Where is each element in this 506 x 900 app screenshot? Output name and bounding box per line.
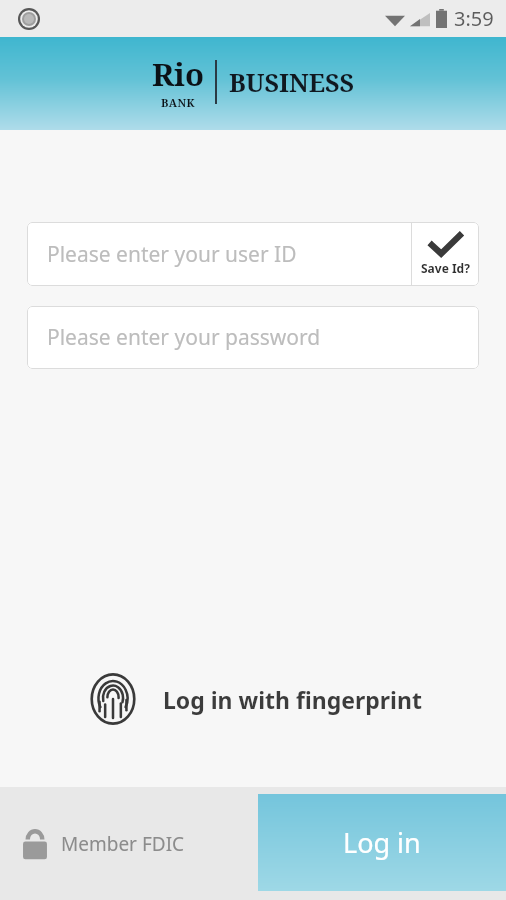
staticText: BUSINESS xyxy=(229,65,354,99)
button[interactable]: Please enter your user ID xyxy=(27,222,411,286)
staticText: 3:59 xyxy=(454,5,494,32)
button[interactable]: Please enter your password xyxy=(27,306,479,369)
staticText: Member FDIC xyxy=(61,831,185,857)
staticText: Log in xyxy=(343,824,421,861)
staticText: Log in with fingerprint xyxy=(163,684,422,715)
button[interactable]: Save Id xyxy=(412,222,479,286)
staticText: Please enter your password xyxy=(47,323,321,352)
staticText: BANK xyxy=(161,95,196,110)
staticText: Save Id? xyxy=(421,260,470,276)
staticText: Rio xyxy=(152,53,205,95)
button[interactable]: Log in with fingerprint xyxy=(0,663,506,735)
button[interactable]: Log in xyxy=(258,794,506,891)
button[interactable]: Member FDIC xyxy=(22,828,185,860)
staticText: Please enter your user ID xyxy=(47,240,297,269)
